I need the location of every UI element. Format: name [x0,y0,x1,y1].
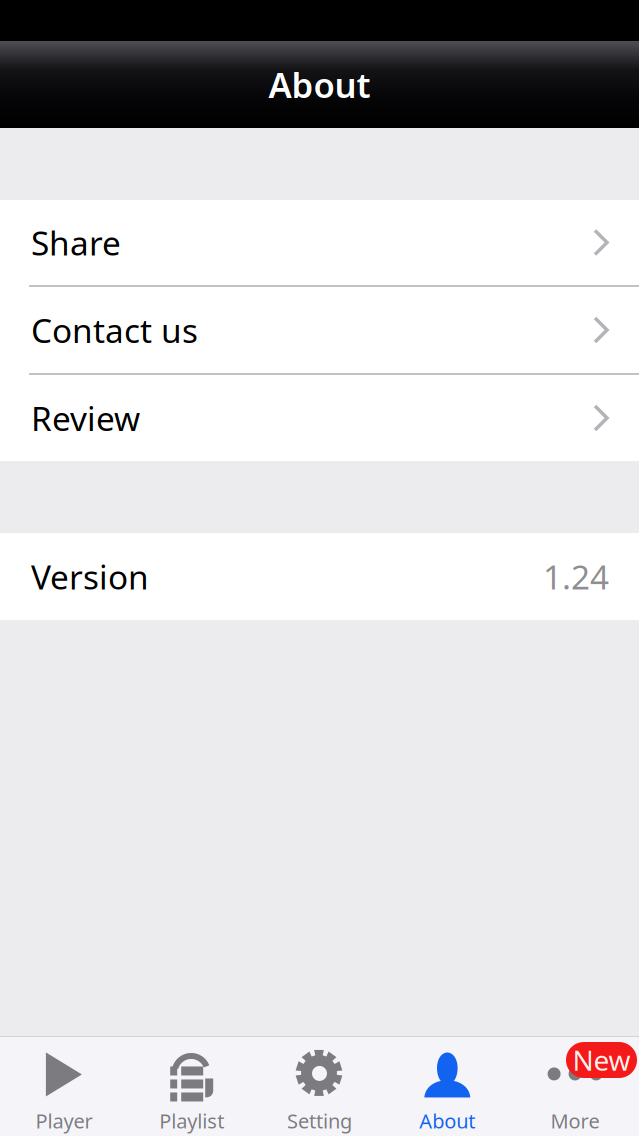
staticText: Player [35,1107,92,1134]
staticText: Contact us [31,308,198,352]
button[interactable]: Player [0,1037,128,1136]
staticText: Playlist [159,1107,224,1134]
staticText: More [551,1107,600,1134]
staticText: New [572,1041,630,1079]
button[interactable]: Review [0,375,639,461]
button[interactable]: Contact us [0,287,639,373]
staticText: Setting [287,1107,352,1134]
staticText: About [419,1107,475,1134]
staticText: Version [31,554,149,599]
button[interactable]: About [383,1037,511,1136]
button[interactable]: Playlist [128,1037,256,1136]
staticText: Review [31,396,140,440]
button[interactable]: Share [0,200,639,285]
staticText: 1.24 [543,554,609,599]
button[interactable]: Setting [256,1037,383,1136]
staticText: About [268,61,370,107]
button[interactable]: More [511,1037,639,1136]
staticText: Share [31,220,121,265]
